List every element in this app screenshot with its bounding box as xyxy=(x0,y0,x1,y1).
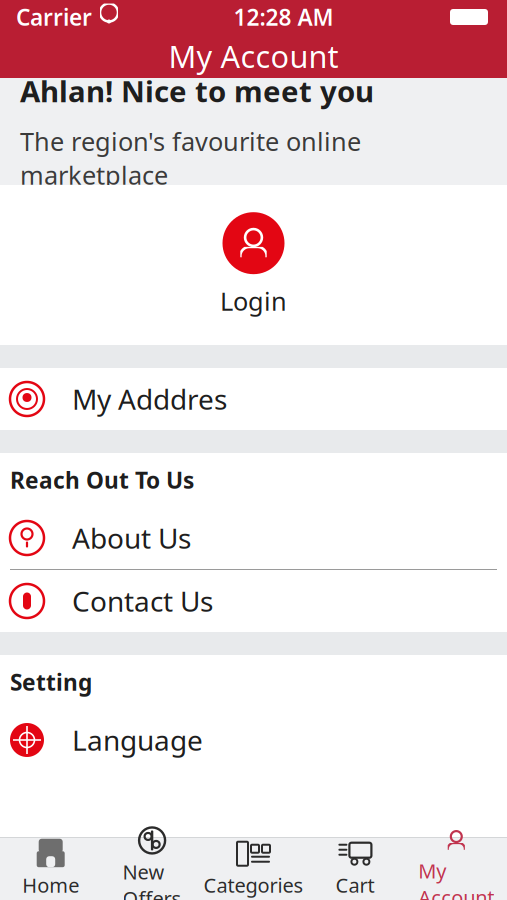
button[interactable]: About Us xyxy=(0,507,507,569)
staticText: New Offers xyxy=(123,858,182,900)
staticText: Carrier xyxy=(16,2,92,32)
staticText: My Account xyxy=(168,36,338,76)
button[interactable]: Categories xyxy=(203,838,304,900)
staticText: Ahlan! Nice to meet you xyxy=(20,71,374,110)
staticText: The region's favourite online marketplac… xyxy=(20,124,361,192)
button[interactable]: Contact Us xyxy=(0,570,507,632)
staticText: Login xyxy=(220,284,287,318)
staticText: Contact Us xyxy=(72,582,213,620)
staticText: My Account xyxy=(418,857,494,900)
button[interactable]: New Offers xyxy=(101,838,203,900)
button[interactable]: Home xyxy=(0,838,101,900)
button[interactable]: Cart xyxy=(304,838,406,900)
staticText: Home xyxy=(22,872,79,898)
button[interactable]: My Account xyxy=(406,838,507,900)
button[interactable]: Login xyxy=(0,185,507,345)
staticText: Cart xyxy=(335,872,374,898)
staticText: Categories xyxy=(203,872,303,898)
staticText: Reach Out To Us xyxy=(10,465,194,495)
staticText: Setting xyxy=(10,667,92,697)
staticText: About Us xyxy=(72,519,191,557)
staticText: Language xyxy=(72,721,203,759)
button[interactable]: Language xyxy=(0,709,507,771)
button[interactable]: My Adddres xyxy=(0,368,507,430)
staticText: My Adddres xyxy=(72,380,227,418)
staticText: 12:28 AM xyxy=(233,2,333,32)
